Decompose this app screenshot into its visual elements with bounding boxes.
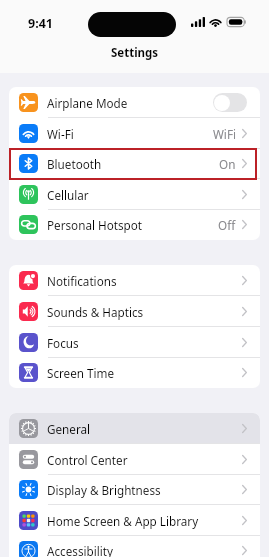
staticText: Sounds & Haptics xyxy=(47,304,144,320)
staticText: Airplane Mode xyxy=(47,95,128,111)
staticText: Screen Time xyxy=(47,365,115,381)
button[interactable]: Home Screen & App Library xyxy=(9,505,260,536)
staticText: Focus xyxy=(47,335,79,351)
button[interactable]: Cellular xyxy=(9,179,260,210)
button[interactable]: Personal Hotspot xyxy=(9,209,260,240)
button[interactable]: Control Center xyxy=(9,444,260,475)
button[interactable]: Airplane Mode xyxy=(9,87,260,118)
staticText: 9:41 xyxy=(28,15,53,32)
button[interactable]: Notifications xyxy=(9,265,260,296)
button[interactable]: Accessibility xyxy=(9,535,260,557)
staticText: Accessibility xyxy=(47,543,113,557)
staticText: Control Center xyxy=(47,452,128,468)
staticText: Bluetooth xyxy=(47,156,102,172)
button[interactable]: Display & Brightness xyxy=(9,474,260,505)
button[interactable]: Focus xyxy=(9,327,260,358)
button[interactable]: Bluetooth xyxy=(9,148,260,179)
staticText: General xyxy=(47,421,91,437)
staticText: Home Screen & App Library xyxy=(47,513,199,529)
button[interactable]: Wi-Fi xyxy=(9,118,260,149)
staticText: Wi-Fi xyxy=(47,126,74,142)
staticText: Display & Brightness xyxy=(47,482,161,498)
button[interactable]: General xyxy=(9,413,260,444)
staticText: On xyxy=(219,156,236,172)
staticText: Personal Hotspot xyxy=(47,217,143,233)
staticText: Settings xyxy=(111,45,159,61)
staticText: Cellular xyxy=(47,187,89,203)
staticText: Off xyxy=(218,217,236,233)
button[interactable]: Screen Time xyxy=(9,357,260,388)
button[interactable]: Sounds & Haptics xyxy=(9,296,260,327)
staticText: WiFi xyxy=(213,126,236,142)
staticText: Notifications xyxy=(47,273,117,289)
